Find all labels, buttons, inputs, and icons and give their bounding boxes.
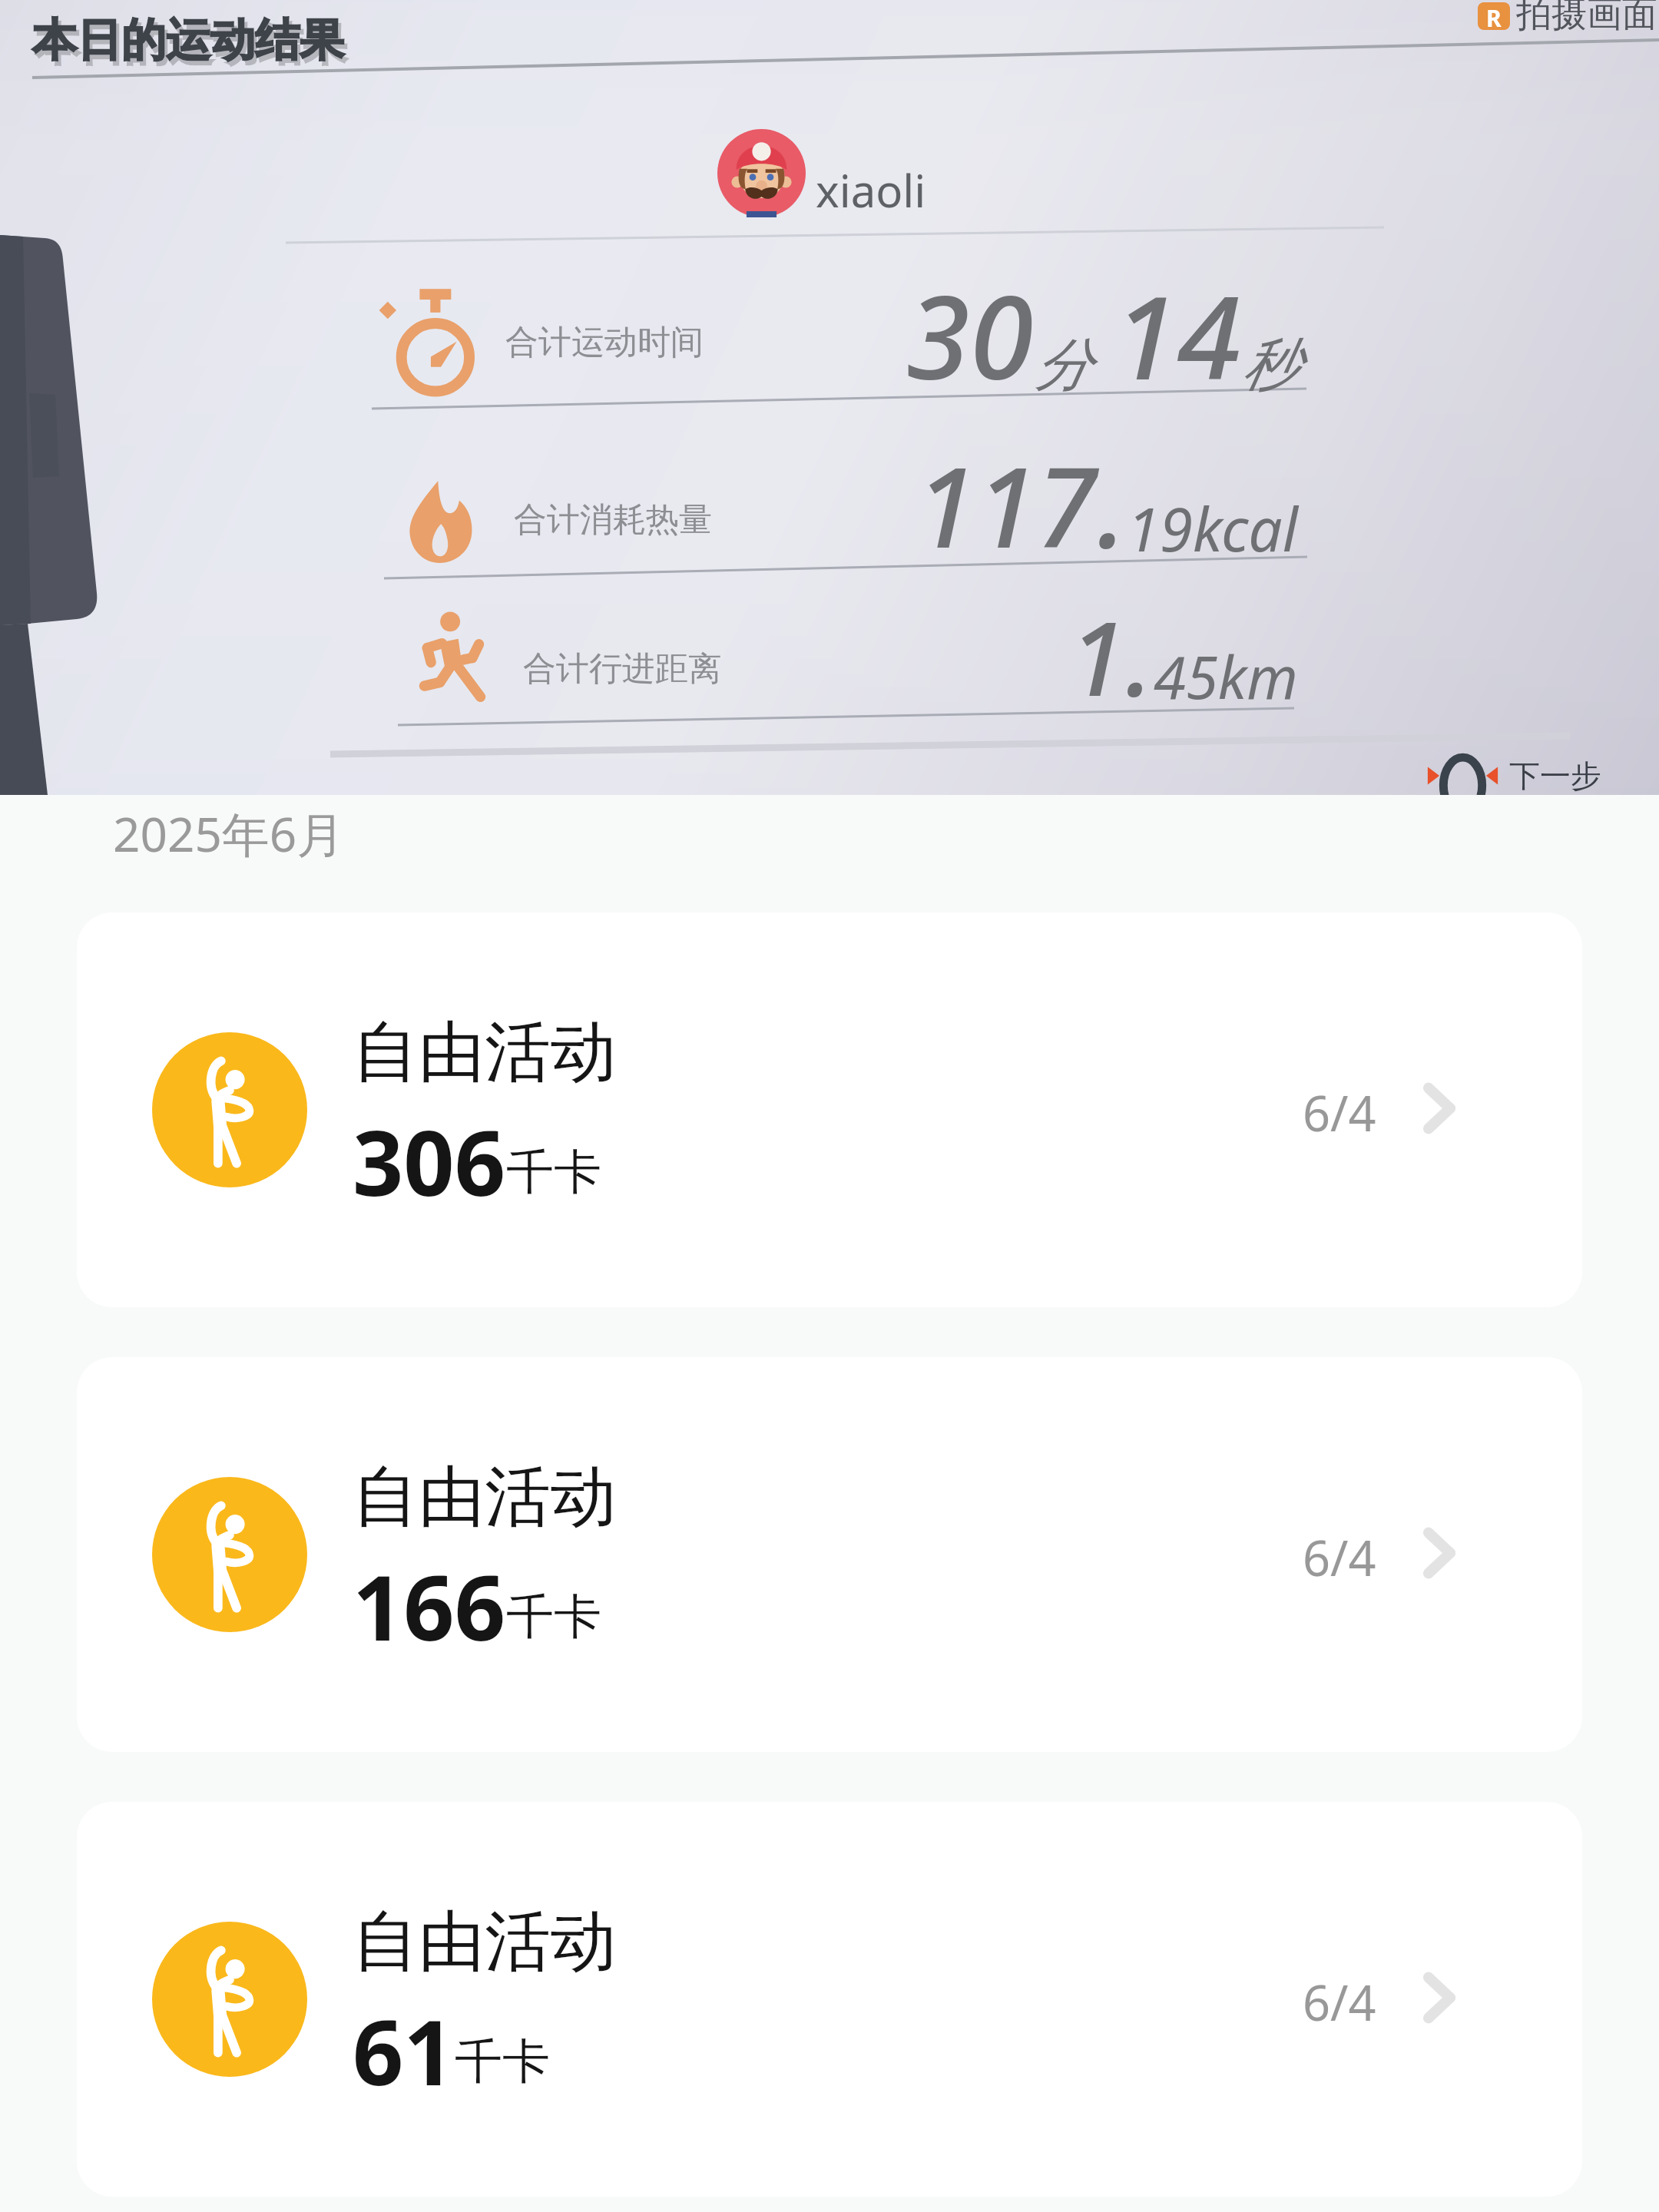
staticText: 61 (353, 1990, 455, 2111)
staticText: R (1486, 2, 1502, 30)
staticText: 下一步 (1509, 757, 1601, 795)
staticText: 合计运动时间 (505, 322, 704, 363)
staticText: 合计行进距离 (523, 648, 721, 690)
staticText: 自由活动 (353, 1455, 617, 1538)
staticText: 2025年6月 (113, 801, 345, 866)
button[interactable]: 自由活动 (77, 1802, 1582, 2197)
staticText: . (1098, 430, 1127, 580)
staticText: 本日的运动结果 (32, 12, 344, 68)
staticText: 自由活动 (353, 1900, 617, 1983)
staticText: 117 (916, 430, 1098, 580)
staticText: 千卡 (455, 2032, 550, 2091)
staticText: 6/4 (1303, 1525, 1376, 1591)
staticText: 千卡 (506, 1142, 601, 1202)
staticText: 14 (1114, 257, 1241, 413)
staticText: 19kcal (1127, 488, 1298, 569)
staticText: 30 (906, 257, 1034, 413)
staticText: 自由活动 (353, 1011, 617, 1094)
staticText: 166 (353, 1545, 506, 1667)
button[interactable]: 自由活动 (77, 1357, 1582, 1752)
staticText: 45km (1154, 637, 1298, 717)
staticText: 6/4 (1303, 1969, 1376, 2035)
other: Open details (1422, 1083, 1456, 1134)
staticText: 千卡 (506, 1587, 601, 1647)
staticText: 分 (1034, 329, 1091, 401)
staticText: 1 (1069, 587, 1126, 726)
other: Open details (1422, 1972, 1456, 2023)
staticText: 306 (353, 1101, 506, 1222)
staticText: 本日的运动结果 (35, 17, 347, 73)
staticText: . (1126, 587, 1154, 726)
button[interactable]: 自由活动 (77, 912, 1582, 1307)
staticText: 拍摄画面 (1516, 0, 1657, 37)
staticText: 秒 (1241, 329, 1298, 401)
button[interactable]: 下一步 (1426, 755, 1601, 795)
staticText: 合计消耗热量 (514, 499, 712, 541)
staticText: 6/4 (1303, 1080, 1376, 1146)
other: Open details (1422, 1528, 1456, 1578)
staticText: xiaoli (816, 160, 926, 220)
